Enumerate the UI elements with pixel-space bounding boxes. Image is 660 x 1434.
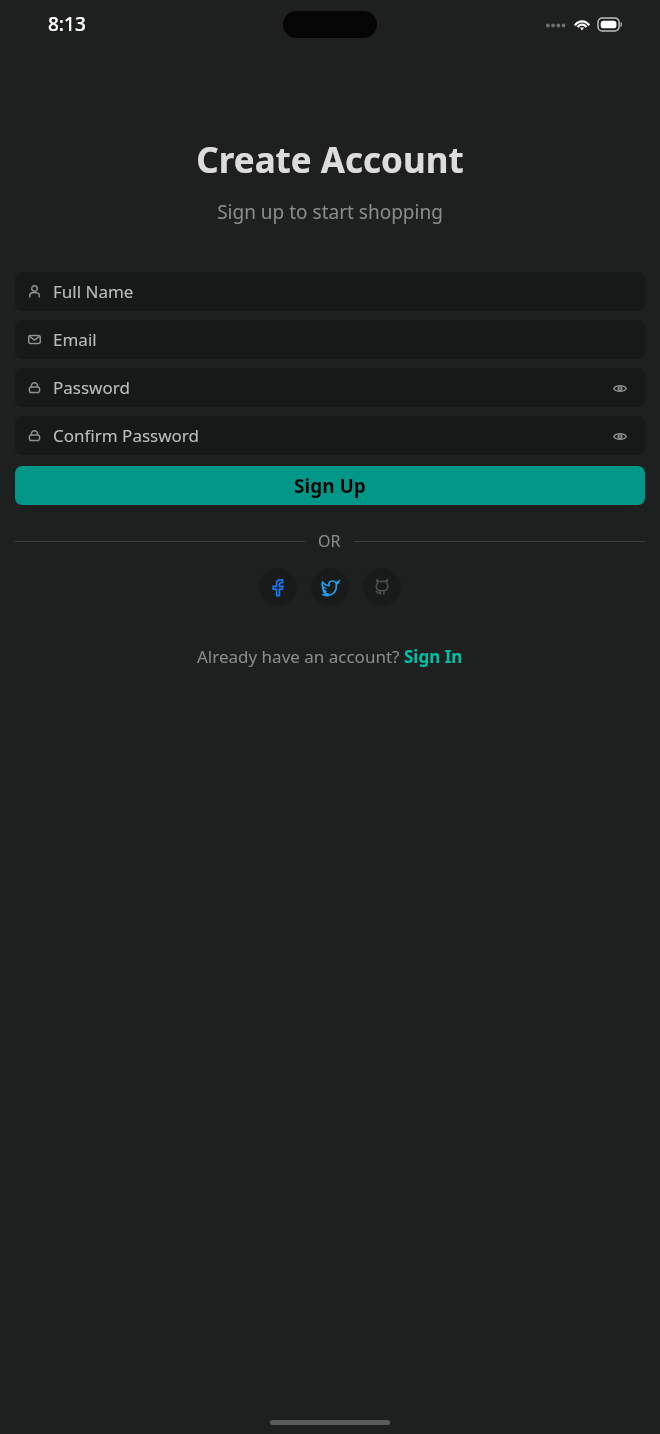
staticText: Sign In <box>404 645 463 668</box>
staticText: Create Account <box>0 136 660 184</box>
button[interactable]: Confirm Password <box>15 416 645 455</box>
button[interactable]: Sign Up <box>15 466 645 505</box>
staticText: Full Name <box>53 280 632 303</box>
staticText: OR <box>318 530 341 552</box>
button[interactable]: Sign In <box>404 645 463 668</box>
staticText: Confirm Password <box>53 424 608 447</box>
button[interactable]: Password <box>15 368 645 407</box>
button[interactable]: Sign up with GitHub <box>363 568 401 606</box>
button[interactable]: Toggle password visibility <box>608 424 632 448</box>
staticText: Sign Up <box>294 473 366 499</box>
button[interactable]: Full Name <box>15 272 645 311</box>
button[interactable]: Sign up with Facebook <box>259 568 297 606</box>
button[interactable]: Toggle password visibility <box>608 376 632 400</box>
staticText: Sign up to start shopping <box>0 199 660 225</box>
staticText: 8:13 <box>48 11 86 37</box>
button[interactable]: Sign up with Twitter <box>311 568 349 606</box>
staticText: Email <box>53 328 632 351</box>
staticText: Already have an account? <box>197 645 404 668</box>
button[interactable]: Email <box>15 320 645 359</box>
staticText: Password <box>53 376 608 399</box>
